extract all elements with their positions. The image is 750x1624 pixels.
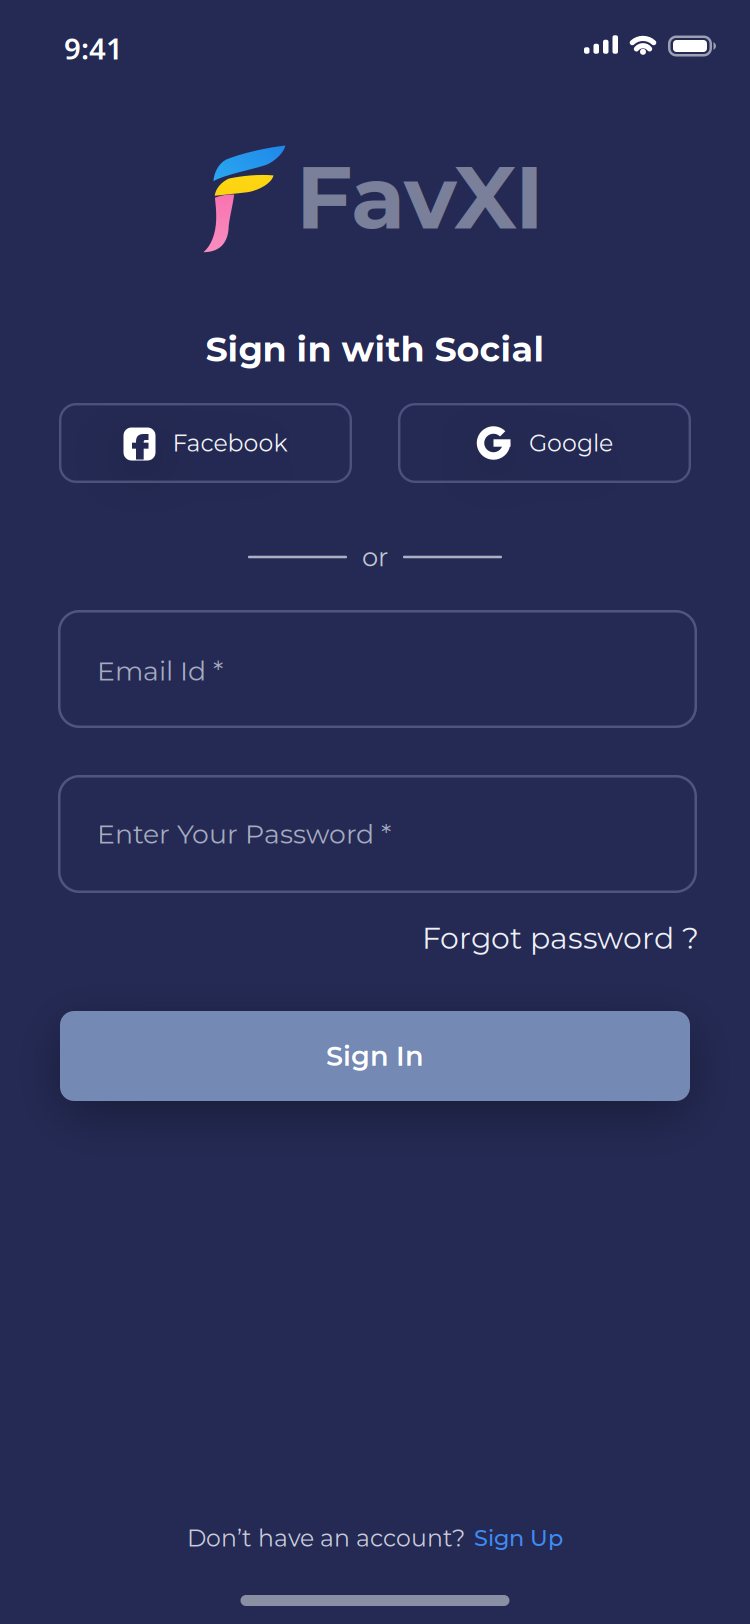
button[interactable]: Forgot password ? [422,920,699,956]
staticText: Google [529,429,613,457]
staticText: Sign Up [474,1524,563,1552]
staticText: Email Id * [97,655,223,687]
staticText: Don’t have an account? [187,1524,465,1552]
staticText: Facebook [172,429,287,457]
staticText: Sign in with Social [205,328,544,370]
staticText: FavXI [296,143,544,251]
button[interactable]: Google [398,403,691,483]
button[interactable]: Enter Your Password * [55,775,694,893]
staticText: Sign In [326,1039,424,1072]
button[interactable]: Sign In [60,1011,690,1101]
button[interactable]: Email Id * [55,610,694,728]
staticText: or [362,541,388,573]
staticText: Forgot password ? [422,920,699,956]
staticText: 9:41 [64,28,123,67]
button[interactable]: Sign Up [474,1524,563,1552]
button[interactable]: Facebook [59,403,352,483]
staticText: Enter Your Password * [97,818,391,850]
